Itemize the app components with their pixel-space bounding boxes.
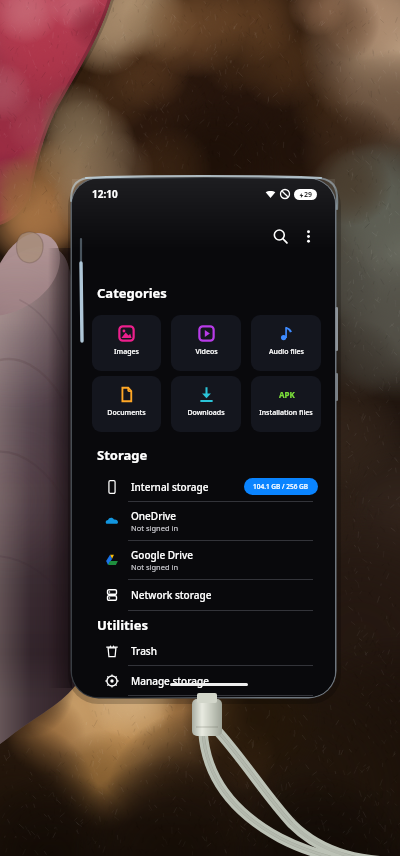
staticText: 12:10 [92, 187, 118, 201]
button[interactable]: Network storage [92, 580, 318, 611]
staticText: Installation files [259, 408, 313, 418]
staticText: Documents [107, 408, 146, 418]
staticText: Utilities [97, 616, 148, 634]
staticText: 104.1 GB / 256 GB [253, 482, 309, 491]
button[interactable]: More options [294, 222, 322, 250]
staticText: Google Drive [131, 548, 193, 562]
button[interactable]: APK [251, 376, 321, 432]
button[interactable]: Trash [92, 636, 318, 666]
staticText: Trash [131, 644, 157, 658]
button[interactable]: Internal storage [92, 472, 318, 502]
staticText: Downloads [187, 408, 225, 418]
staticText: Not signed in [131, 523, 179, 533]
button[interactable]: OneDrive [92, 502, 318, 541]
button[interactable]: Videos [171, 315, 241, 371]
staticText: Internal storage [131, 480, 209, 494]
button[interactable]: Documents [92, 376, 161, 432]
staticText: Storage [97, 446, 148, 464]
staticText: APK [279, 389, 295, 400]
button[interactable]: Manage storage [92, 666, 318, 696]
staticText: Audio files [269, 347, 304, 357]
button[interactable]: Google Drive [92, 541, 318, 580]
staticText: Not signed in [131, 562, 179, 572]
button[interactable]: Images [92, 315, 161, 371]
staticText: Categories [97, 284, 167, 302]
button[interactable]: Search [266, 222, 294, 250]
staticText: Network storage [131, 588, 212, 602]
staticText: Images [114, 347, 139, 357]
button[interactable]: Audio files [251, 315, 321, 371]
staticText: Videos [195, 347, 218, 357]
staticText: OneDrive [131, 509, 177, 523]
staticText: Manage storage [131, 674, 209, 688]
staticText: 29 [304, 190, 313, 200]
button[interactable]: Downloads [171, 376, 241, 432]
